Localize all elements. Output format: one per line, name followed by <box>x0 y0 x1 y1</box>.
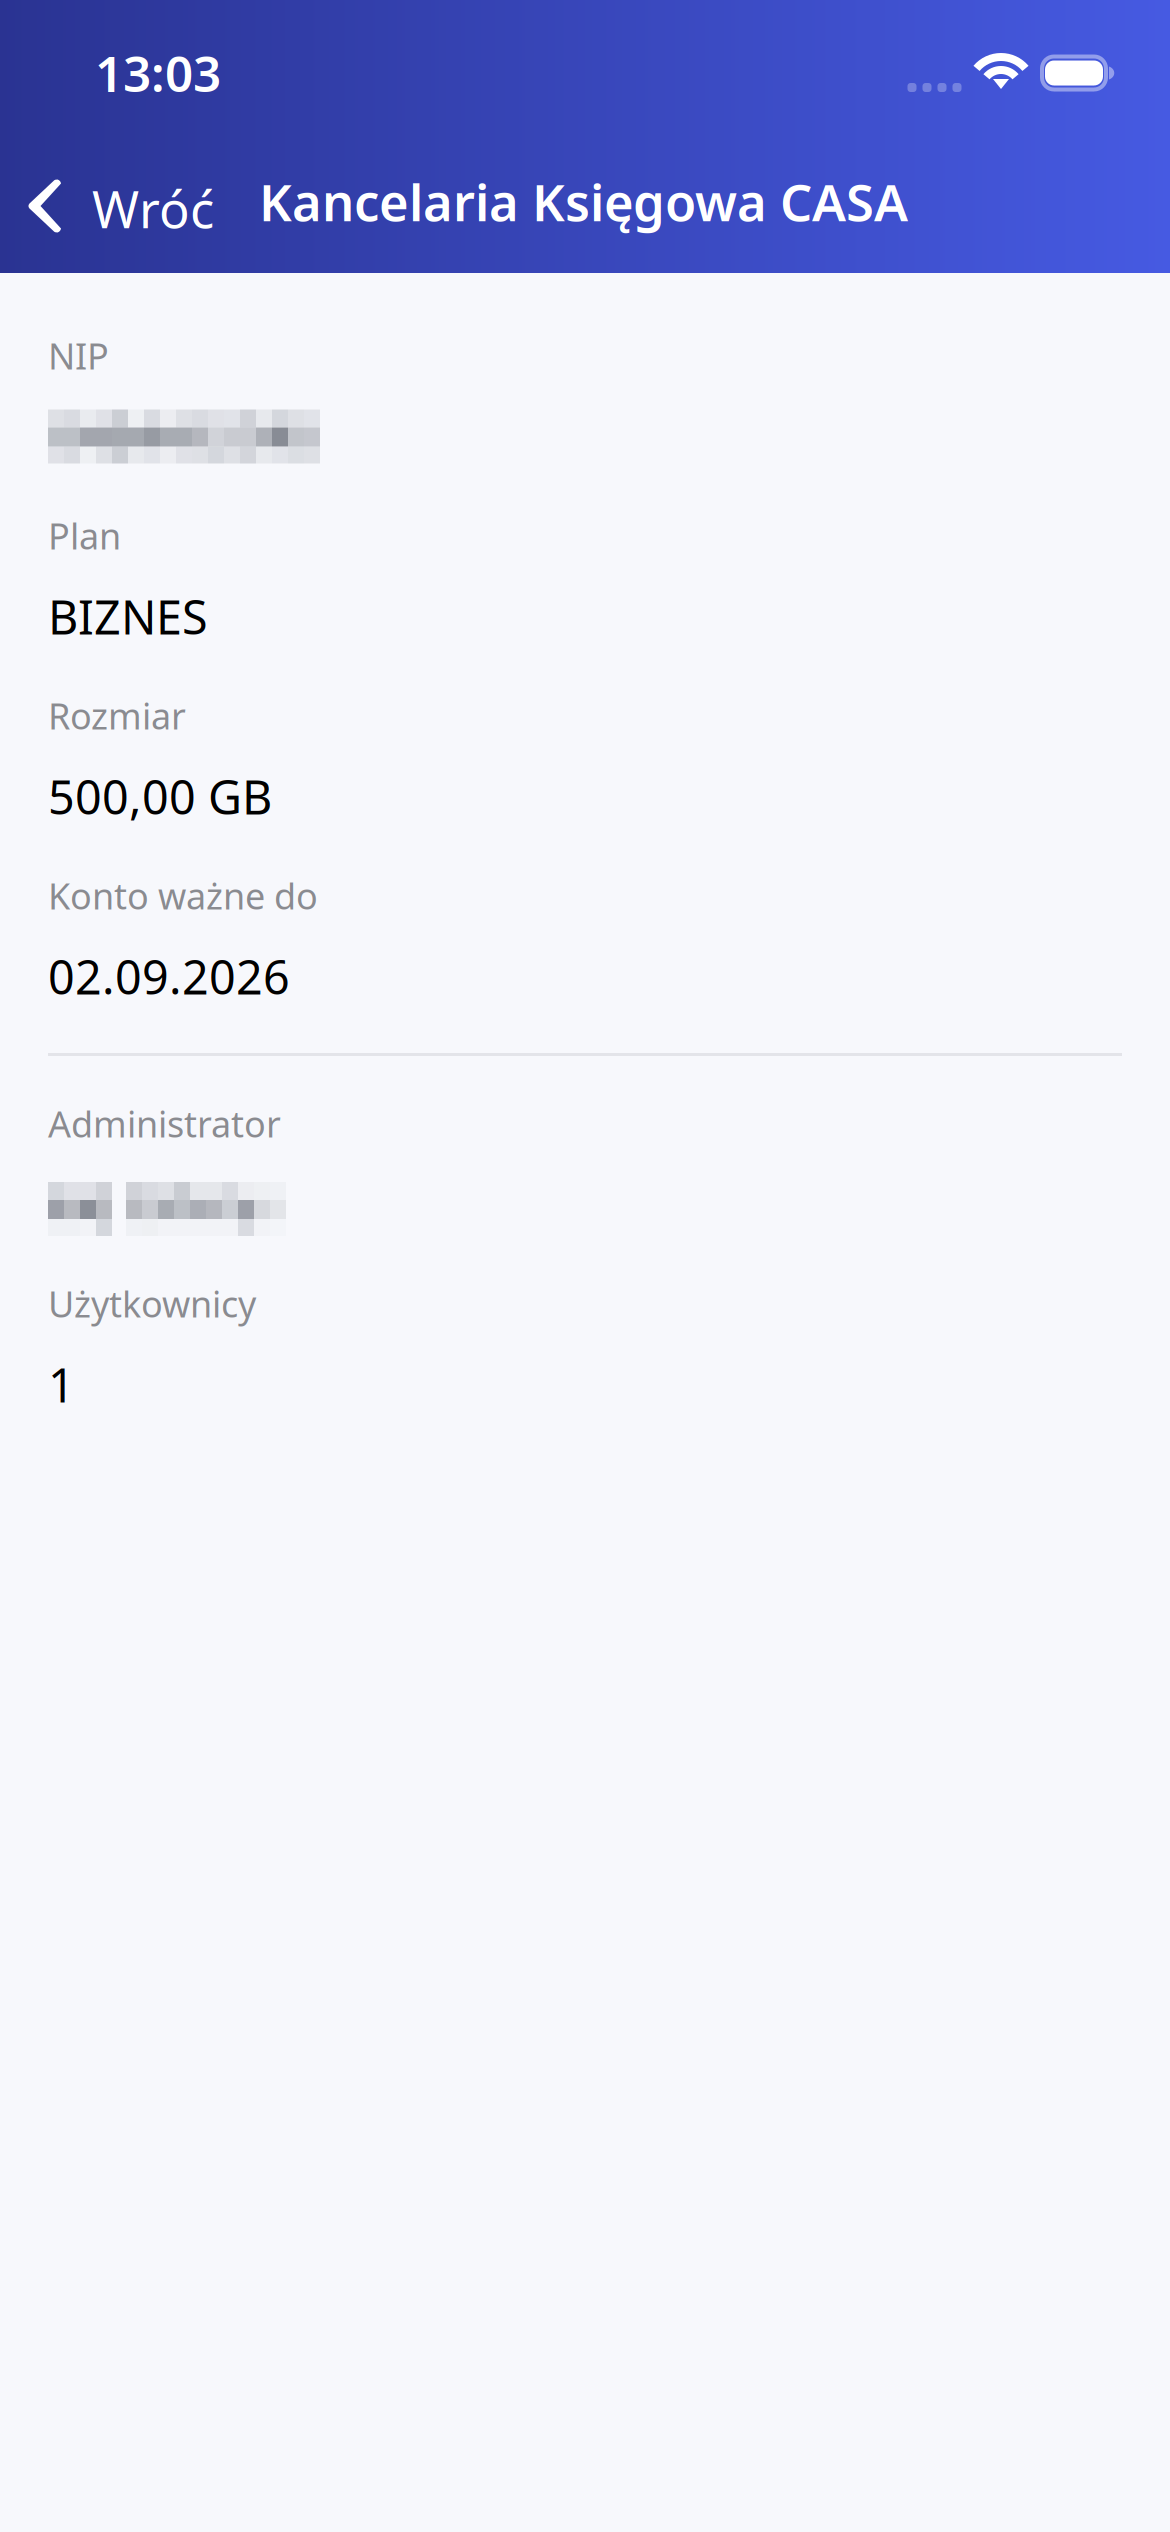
staticText: 02.09.2026 <box>48 945 290 1007</box>
staticText: Rozmiar <box>48 692 186 739</box>
staticText: Użytkownicy <box>48 1280 256 1327</box>
button[interactable]: Wróć <box>0 168 226 241</box>
staticText: 13:03 <box>95 40 221 105</box>
staticText: NIP <box>48 332 109 379</box>
staticText: Wróć <box>92 175 214 242</box>
staticText: Plan <box>48 512 121 559</box>
staticText: Administrator <box>48 1100 281 1147</box>
staticText: 500,00 GB <box>48 765 272 827</box>
staticText: 1 <box>48 1353 75 1415</box>
staticText: Kancelaria Księgowa CASA <box>259 168 908 235</box>
staticText: Konto ważne do <box>48 872 318 919</box>
staticText: BIZNES <box>48 585 208 647</box>
